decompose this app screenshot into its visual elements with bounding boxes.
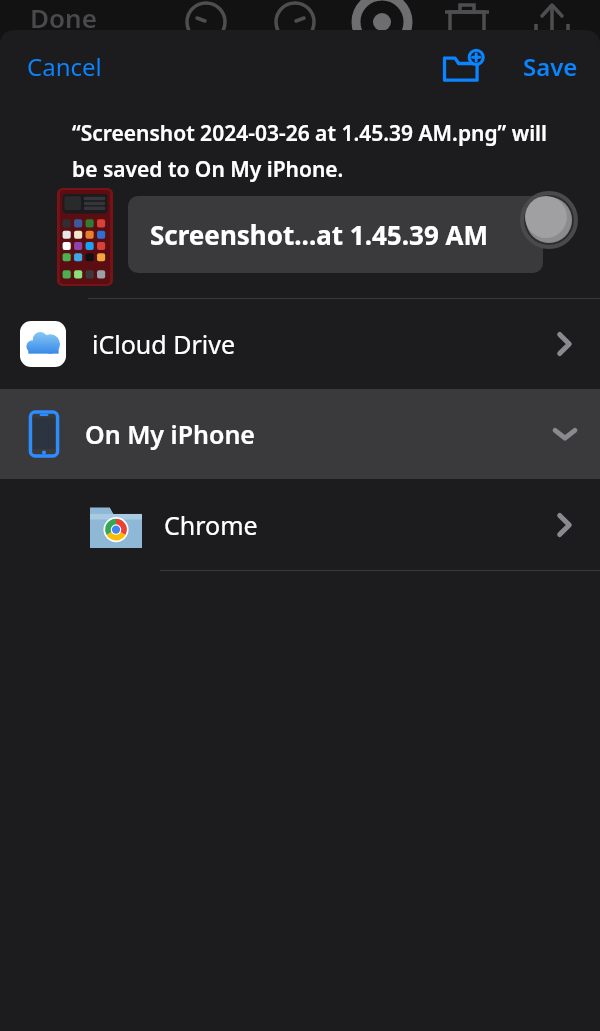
staticText: “Screenshot 2024-03-26 at 1.45.39 AM.png…: [72, 119, 560, 183]
button[interactable]: New Folder: [436, 40, 490, 94]
staticText: Save: [523, 50, 578, 83]
staticText: Screenshot...at 1.45.39 AM: [150, 217, 489, 252]
staticText: Done: [30, 0, 97, 32]
button[interactable]: Chrome: [0, 479, 600, 570]
staticText: iCloud Drive: [92, 327, 235, 361]
button[interactable]: iCloud Drive: [0, 299, 600, 389]
staticText: On My iPhone: [85, 417, 255, 451]
button[interactable]: Save: [511, 42, 600, 91]
staticText: Cancel: [27, 50, 102, 83]
button[interactable]: Screenshot...at 1.45.39 AM: [128, 196, 543, 273]
staticText: Chrome: [164, 508, 258, 542]
button[interactable]: Cancel: [0, 42, 114, 91]
button[interactable]: On My iPhone: [0, 389, 600, 479]
